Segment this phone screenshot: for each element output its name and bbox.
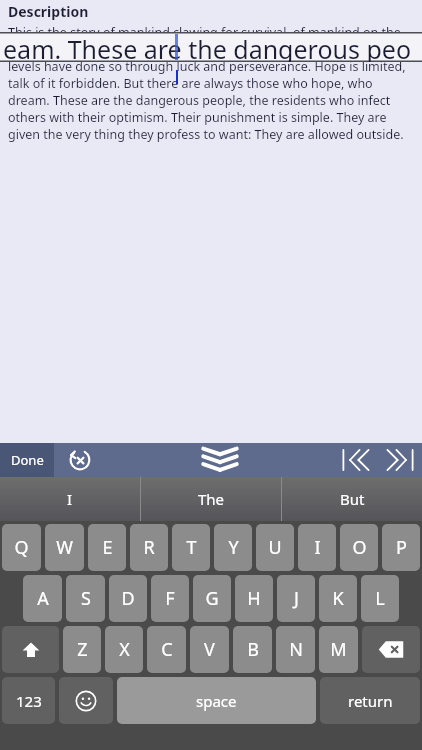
- staticText: Z: [77, 637, 88, 662]
- button[interactable]: I: [298, 524, 336, 571]
- button[interactable]: K: [319, 575, 357, 622]
- staticText: But: [340, 489, 365, 509]
- staticText: Q: [14, 535, 29, 560]
- button[interactable]: S: [66, 575, 105, 622]
- button[interactable]: Y: [214, 524, 252, 571]
- staticText: C: [161, 637, 173, 662]
- staticText: W: [56, 535, 73, 560]
- staticText: V: [204, 637, 215, 662]
- button[interactable]: Backspace: [362, 626, 420, 673]
- staticText: This is the story of mankind clawing for…: [8, 24, 414, 143]
- staticText: H: [247, 586, 261, 611]
- staticText: G: [205, 586, 219, 611]
- staticText: X: [119, 637, 130, 662]
- button[interactable]: M: [319, 626, 358, 673]
- button[interactable]: Next field: [378, 443, 422, 477]
- button[interactable]: But: [282, 477, 422, 521]
- button[interactable]: The: [141, 477, 281, 521]
- button[interactable]: H: [235, 575, 273, 622]
- staticText: 123: [16, 691, 42, 711]
- button[interactable]: N: [276, 626, 315, 673]
- staticText: Y: [228, 535, 239, 560]
- staticText: J: [294, 586, 299, 611]
- staticText: The: [198, 489, 225, 509]
- staticText: O: [352, 535, 367, 560]
- staticText: Done: [11, 451, 44, 469]
- button[interactable]: 123: [2, 677, 55, 724]
- button[interactable]: return: [320, 677, 420, 724]
- staticText: A: [37, 586, 49, 611]
- button[interactable]: V: [190, 626, 229, 673]
- button[interactable]: R: [130, 524, 168, 571]
- staticText: E: [102, 535, 113, 560]
- button[interactable]: I: [0, 477, 140, 521]
- button[interactable]: P: [382, 524, 420, 571]
- staticText: T: [186, 535, 197, 560]
- button[interactable]: Shift: [2, 626, 59, 673]
- staticText: B: [247, 637, 259, 662]
- button[interactable]: L: [361, 575, 399, 622]
- button[interactable]: C: [147, 626, 186, 673]
- button[interactable]: Z: [63, 626, 101, 673]
- button[interactable]: Emoji: [59, 677, 113, 724]
- staticText: F: [165, 586, 175, 611]
- button[interactable]: Q: [2, 524, 41, 571]
- staticText: I: [314, 535, 321, 560]
- button[interactable]: U: [256, 524, 294, 571]
- button[interactable]: B: [233, 626, 272, 673]
- button[interactable]: G: [193, 575, 231, 622]
- button[interactable]: T: [172, 524, 210, 571]
- button[interactable]: Previous field: [334, 443, 378, 477]
- staticText: return: [348, 691, 393, 711]
- button[interactable]: X: [105, 626, 143, 673]
- staticText: P: [396, 535, 407, 560]
- button[interactable]: E: [88, 524, 126, 571]
- staticText: R: [143, 535, 155, 560]
- button[interactable]: D: [109, 575, 147, 622]
- staticText: space: [196, 691, 237, 711]
- button[interactable]: Scroll down: [190, 443, 250, 477]
- button[interactable]: space: [117, 677, 316, 724]
- staticText: D: [121, 586, 135, 611]
- button[interactable]: A: [23, 575, 62, 622]
- button[interactable]: J: [277, 575, 315, 622]
- button[interactable]: O: [340, 524, 378, 571]
- staticText: M: [330, 637, 347, 662]
- staticText: N: [289, 637, 303, 662]
- staticText: Description: [8, 2, 89, 21]
- button[interactable]: Undo: [54, 443, 106, 477]
- staticText: U: [268, 535, 282, 560]
- button[interactable]: W: [45, 524, 84, 571]
- staticText: eam. These are the dangerous peo: [3, 32, 412, 62]
- staticText: I: [67, 489, 73, 509]
- staticText: K: [332, 586, 344, 611]
- staticText: L: [375, 586, 385, 611]
- button[interactable]: F: [151, 575, 189, 622]
- staticText: S: [81, 586, 91, 611]
- button[interactable]: Done: [0, 443, 54, 477]
